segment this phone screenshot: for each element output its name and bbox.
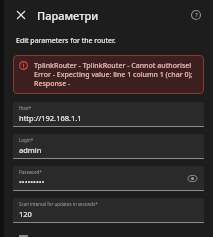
staticText: Host* — [19, 105, 32, 111]
staticText: http://192.168.1.1 — [19, 113, 82, 123]
staticText: ••••••••• — [19, 177, 45, 187]
button[interactable]: Login* — [13, 134, 204, 159]
staticText: Login* — [19, 137, 34, 143]
staticText: ? — [195, 11, 198, 19]
staticText: Параметри — [37, 8, 99, 23]
staticText: TplinkRouter - TplinkRouter - Cannot aut… — [34, 61, 198, 88]
staticText: 120 — [19, 209, 32, 219]
button[interactable]: Scan interval for updates in seconds* — [13, 198, 204, 223]
button[interactable]: Password* — [13, 166, 204, 191]
button[interactable]: Toggle password visibility — [186, 172, 198, 184]
button[interactable]: Host* — [13, 102, 204, 127]
button[interactable]: Close — [13, 7, 29, 23]
staticText: Scan interval for updates in seconds* — [19, 201, 98, 207]
staticText: admin — [19, 145, 42, 155]
button[interactable]: Help — [188, 7, 204, 23]
staticText: Password* — [19, 169, 42, 175]
button[interactable]: Verify ssl for https connection — [13, 234, 204, 237]
staticText: Edit parameters for the router. — [16, 36, 116, 46]
